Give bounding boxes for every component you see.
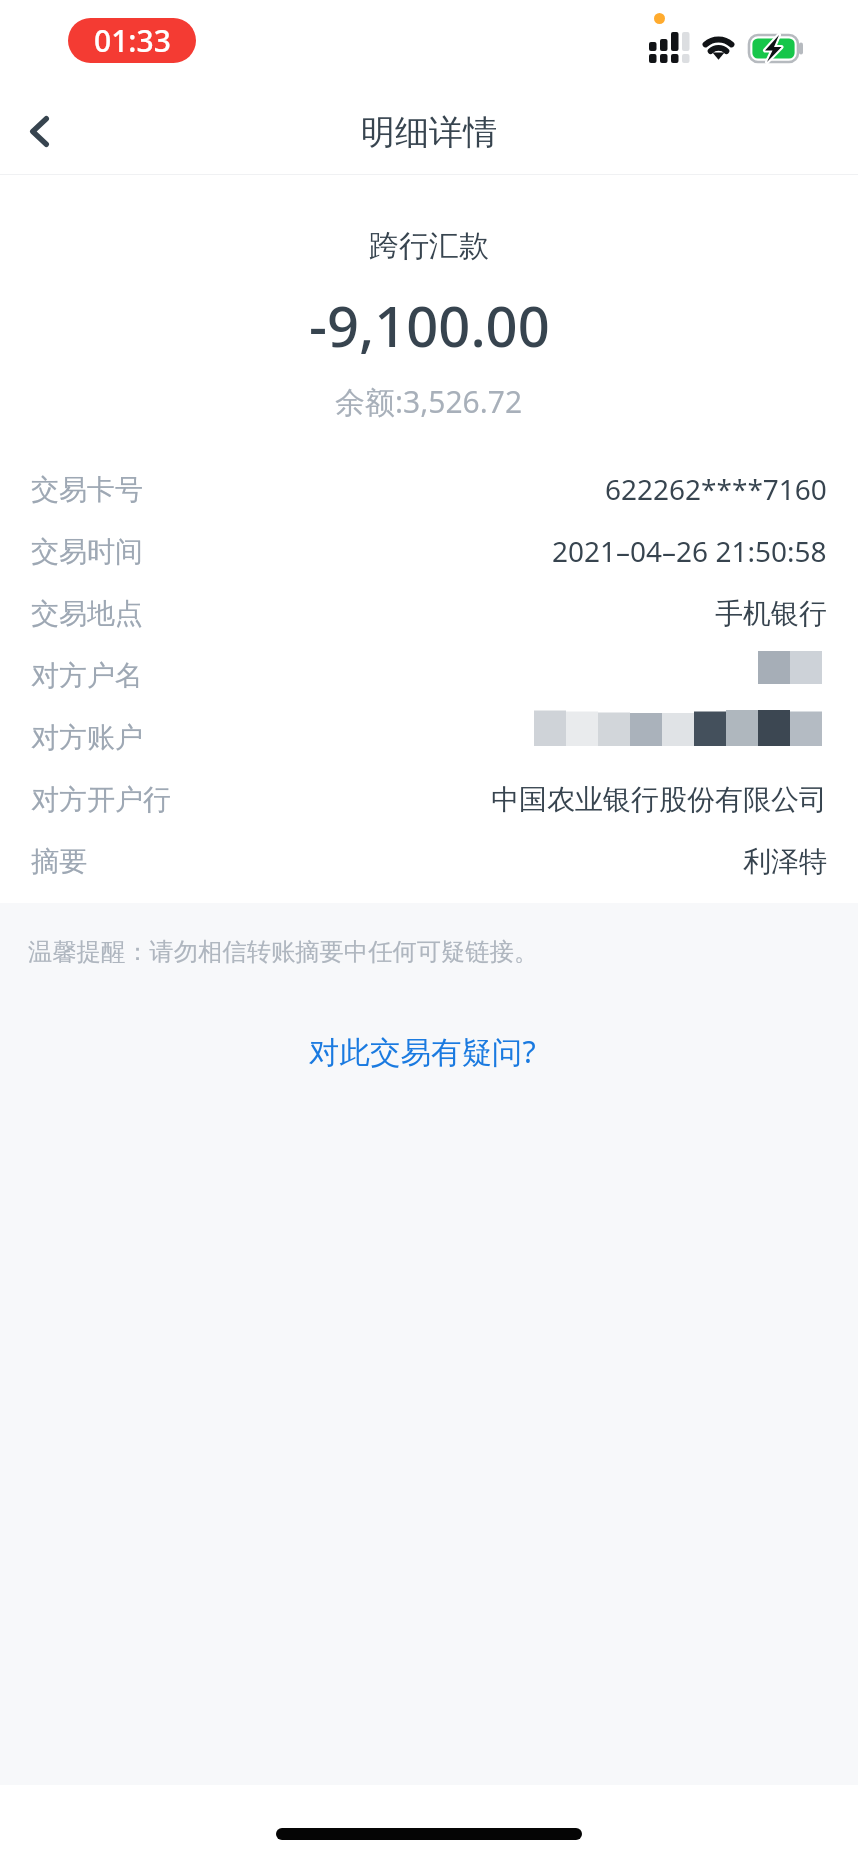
staticText: 明细详情 — [361, 111, 497, 154]
staticText: 交易卡号 — [31, 472, 143, 507]
button[interactable]: 对此交易有疑问? — [289, 1022, 556, 1080]
button[interactable]: 交易卡号 — [0, 458, 858, 520]
button[interactable]: 交易地点 — [0, 582, 858, 644]
staticText: -9,100.00 — [309, 287, 550, 363]
staticText: 对方户名 — [31, 658, 143, 693]
staticText: 622262****7160 — [605, 470, 827, 508]
staticText: 交易地点 — [31, 596, 143, 631]
staticText: 温馨提醒：请勿相信转账摘要中任何可疑链接。 — [28, 937, 539, 968]
staticText: 对方开户行 — [31, 782, 171, 817]
staticText: 中国农业银行股份有限公司 — [491, 782, 827, 817]
staticText: 交易时间 — [31, 534, 143, 569]
button[interactable]: 交易时间 — [0, 520, 858, 582]
staticText: 01:33 — [94, 20, 171, 61]
staticText: 余额:3,526.72 — [335, 381, 523, 422]
staticText: 对方账户 — [31, 720, 143, 755]
button[interactable]: 对方户名 — [0, 644, 858, 706]
button[interactable]: 对方开户行 — [0, 768, 858, 830]
staticText: 2021–04–26 21:50:58 — [552, 532, 827, 570]
staticText: 跨行汇款 — [369, 227, 489, 265]
button[interactable]: 对方账户 — [0, 706, 858, 768]
staticText: 手机银行 — [715, 596, 827, 631]
staticText: 利泽特 — [743, 844, 827, 879]
staticText: 摘要 — [31, 844, 87, 879]
button[interactable]: Back — [0, 88, 80, 175]
button[interactable]: 摘要 — [0, 830, 858, 892]
